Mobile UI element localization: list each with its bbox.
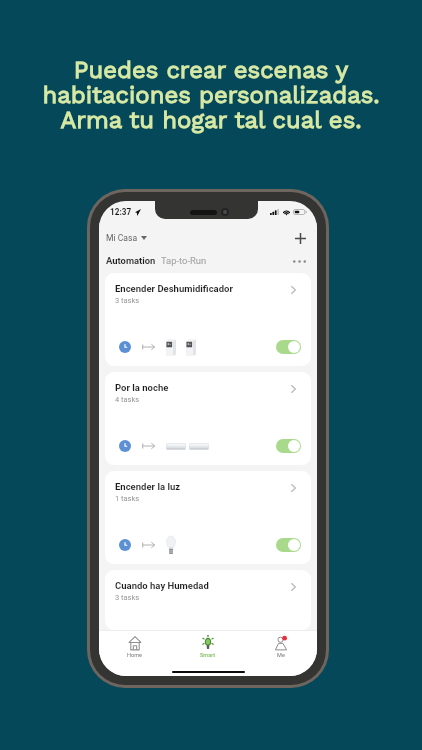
staticText: Smart — [200, 652, 216, 659]
button[interactable]: Automation — [106, 252, 156, 269]
staticText: Me — [277, 652, 285, 659]
button[interactable]: Toggle automation — [276, 340, 301, 354]
button[interactable]: Cuando hay Humedad — [105, 570, 311, 630]
button[interactable]: Toggle automation — [276, 439, 301, 453]
staticText: 3 tasks — [115, 296, 140, 305]
button[interactable]: Add — [290, 228, 310, 248]
staticText: Por la noche — [115, 382, 169, 393]
staticText: 4 tasks — [115, 395, 140, 404]
staticText: Puedes crear escenas y habitaciones pers… — [0, 56, 422, 134]
button[interactable]: Por la noche — [105, 372, 311, 465]
button[interactable]: Encender la luz — [105, 471, 311, 564]
staticText: 3 tasks — [115, 593, 140, 602]
button[interactable]: Toggle automation — [276, 538, 301, 552]
button[interactable]: Me — [244, 631, 317, 659]
button[interactable]: More options — [290, 252, 308, 270]
staticText: 1 tasks — [115, 494, 140, 503]
staticText: Tap-to-Run — [161, 255, 207, 266]
button[interactable]: Encender Deshumidificador — [105, 273, 311, 366]
staticText: Mi Casa — [106, 233, 138, 243]
staticText: Home — [127, 652, 143, 659]
button[interactable]: Tap-to-Run — [161, 252, 207, 269]
staticText: Cuando hay Humedad — [115, 580, 209, 591]
button[interactable]: Mi Casa — [106, 229, 147, 247]
staticText: Encender Deshumidificador — [115, 283, 233, 294]
staticText: 12:37 — [110, 207, 132, 217]
staticText: Encender la luz — [115, 481, 181, 492]
button[interactable]: Home — [99, 631, 171, 659]
button[interactable]: Smart — [171, 631, 244, 659]
staticText: Automation — [106, 255, 156, 266]
